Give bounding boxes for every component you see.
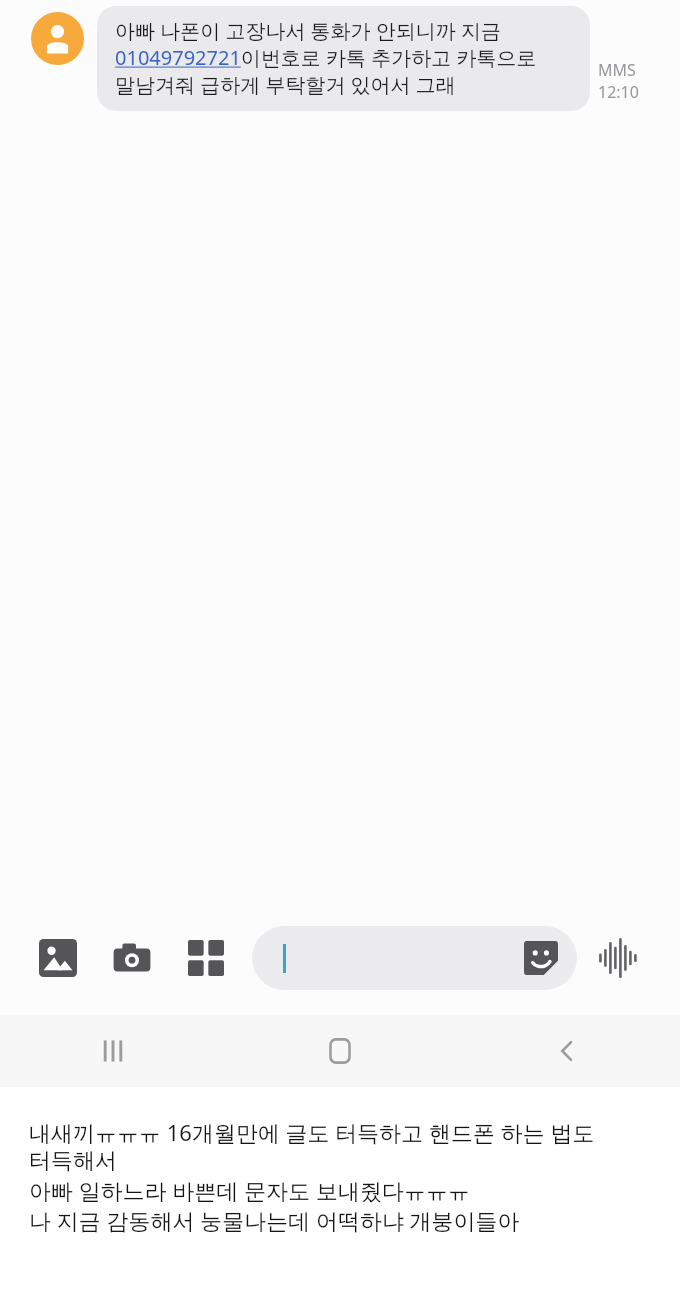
staticText: 말남겨줘 급하게 부탁할거 있어서 그래 bbox=[115, 71, 456, 98]
button[interactable]: Back bbox=[453, 1015, 680, 1087]
staticText: 12:10 bbox=[598, 81, 639, 103]
button[interactable]: Stickers bbox=[522, 939, 560, 977]
staticText: 나 지금 감동해서 눙물나는데 어떡하냐 개붕이들아 bbox=[29, 1205, 520, 1235]
button[interactable]: Voice message bbox=[594, 934, 642, 982]
staticText: 아빠 일하느라 바쁜데 문자도 보내줬다ㅠㅠㅠ bbox=[29, 1175, 470, 1205]
button[interactable]: 아빠 나폰이 고장나서 통화가 안되니까 지금 bbox=[97, 6, 590, 111]
button[interactable]: Attach image bbox=[34, 934, 82, 982]
button[interactable]: Camera bbox=[108, 934, 156, 982]
staticText: 내새끼ㅠㅠㅠ 16개월만에 글도 터득하고 핸드폰 하는 법도 bbox=[29, 1117, 595, 1147]
button[interactable]: Contact avatar bbox=[31, 12, 84, 65]
staticText: 아빠 나폰이 고장나서 통화가 안되니까 지금 bbox=[115, 17, 501, 44]
button[interactable]: Recents bbox=[0, 1015, 226, 1087]
staticText: 01049792721이번호로 카톡 추가하고 카톡으로 bbox=[115, 44, 537, 71]
staticText: MMS bbox=[598, 59, 636, 81]
button[interactable]: More options bbox=[182, 934, 230, 982]
button[interactable]: Home bbox=[226, 1015, 453, 1087]
button[interactable]: Stickers bbox=[252, 926, 577, 990]
staticText: 터득해서 bbox=[29, 1147, 117, 1175]
